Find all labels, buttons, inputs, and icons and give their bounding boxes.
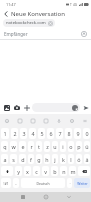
staticText: Deutsch: [36, 181, 50, 186]
button[interactable]: Weiter: [74, 178, 90, 188]
button[interactable]: Clipboard: [39, 114, 52, 127]
staticText: z: [46, 143, 49, 150]
staticText: w: [11, 143, 16, 150]
button[interactable]: notebookcheck.com: [3, 19, 55, 27]
button[interactable]: Voice input: [52, 114, 65, 127]
button[interactable]: Settings: [65, 114, 78, 127]
button[interactable]: ö: [76, 154, 82, 164]
staticText: n: [62, 168, 66, 175]
button[interactable]: 0: [83, 128, 90, 139]
button[interactable]: w: [10, 141, 17, 152]
button[interactable]: 5: [38, 128, 45, 139]
staticText: e: [21, 143, 25, 150]
button[interactable]: i: [60, 141, 66, 152]
button[interactable]: 4: [29, 128, 36, 139]
button[interactable]: More options: [22, 101, 32, 114]
button[interactable]: e: [19, 141, 26, 152]
button[interactable]: More: [78, 114, 91, 127]
button[interactable]: b: [51, 166, 58, 176]
button[interactable]: Stickers: [13, 114, 26, 127]
button[interactable]: 1: [1, 128, 9, 139]
button[interactable]: a: [1, 154, 8, 164]
staticText: ö: [77, 156, 81, 163]
button[interactable]: 8: [65, 128, 72, 139]
button[interactable]: GIF: [26, 114, 39, 127]
button[interactable]: 3: [20, 128, 27, 139]
staticText: 4G: [73, 3, 78, 7]
staticText: v: [44, 168, 47, 175]
button[interactable]: Shift: [1, 166, 13, 176]
button[interactable]: s: [10, 154, 17, 164]
button[interactable]: Home: [34, 192, 57, 202]
button[interactable]: Deutsch: [21, 178, 65, 188]
button[interactable]: Gallery: [2, 101, 12, 114]
staticText: ä: [85, 156, 89, 163]
button[interactable]: j: [52, 154, 58, 164]
button[interactable]: t: [36, 141, 42, 152]
staticText: t: [38, 143, 40, 150]
button[interactable]: c: [33, 166, 40, 176]
staticText: f: [30, 156, 32, 163]
button[interactable]: k: [60, 154, 66, 164]
staticText: b: [53, 168, 57, 175]
staticText: j: [54, 156, 56, 163]
button[interactable]: !#1: [1, 178, 11, 188]
button[interactable]: 6: [47, 128, 54, 139]
staticText: o: [69, 143, 73, 150]
button[interactable]: q: [1, 141, 8, 152]
button[interactable]: Send: [80, 101, 91, 114]
staticText: 5: [40, 130, 44, 137]
button[interactable]: ü: [84, 141, 90, 152]
button[interactable]: Back: [0, 9, 11, 18]
button[interactable]: v: [42, 166, 49, 176]
button[interactable]: Recent apps: [11, 192, 34, 202]
staticText: x: [26, 168, 29, 175]
staticText: T: [70, 3, 72, 7]
button[interactable]: Add contact: [79, 29, 88, 38]
button[interactable]: m: [69, 166, 76, 176]
staticText: d: [21, 156, 25, 163]
button[interactable]: 2: [11, 128, 18, 139]
button[interactable]: o: [68, 141, 74, 152]
staticText: 8: [67, 130, 71, 137]
button[interactable]: z: [44, 141, 50, 152]
button[interactable]: Camera: [12, 101, 22, 114]
staticText: ,: [15, 180, 17, 186]
button[interactable]: u: [52, 141, 58, 152]
staticText: l: [70, 156, 72, 163]
button[interactable]: 9: [74, 128, 81, 139]
button[interactable]: y: [15, 166, 22, 176]
button[interactable]: h: [44, 154, 50, 164]
button[interactable]: Backspace: [78, 166, 90, 176]
staticText: ü: [85, 143, 89, 150]
staticText: q: [3, 143, 7, 150]
button[interactable]: g: [36, 154, 42, 164]
button[interactable]: .: [67, 178, 72, 188]
button[interactable]: n: [60, 166, 67, 176]
button[interactable]: r: [28, 141, 34, 152]
staticText: 7: [58, 130, 62, 137]
staticText: i: [62, 143, 64, 150]
staticText: 2: [13, 130, 17, 137]
button[interactable]: ,: [13, 178, 19, 188]
staticText: s: [12, 156, 15, 163]
staticText: k: [62, 156, 65, 163]
staticText: Neue Konversation: [11, 10, 65, 18]
button[interactable]: Emoji: [0, 114, 13, 127]
staticText: a: [3, 156, 7, 163]
staticText: 0: [85, 130, 89, 137]
button[interactable]: 7: [56, 128, 63, 139]
staticText: .: [69, 180, 71, 186]
staticText: y: [17, 168, 20, 175]
button[interactable]: x: [24, 166, 31, 176]
button[interactable]: d: [19, 154, 26, 164]
staticText: !#1: [3, 181, 9, 186]
button[interactable]: l: [68, 154, 74, 164]
button[interactable]: f: [28, 154, 34, 164]
button[interactable]: ä: [84, 154, 90, 164]
button[interactable]: p: [76, 141, 82, 152]
staticText: p: [77, 143, 81, 150]
button[interactable]: Back: [57, 192, 80, 202]
staticText: r: [30, 143, 33, 150]
button[interactable]: [32, 103, 80, 112]
